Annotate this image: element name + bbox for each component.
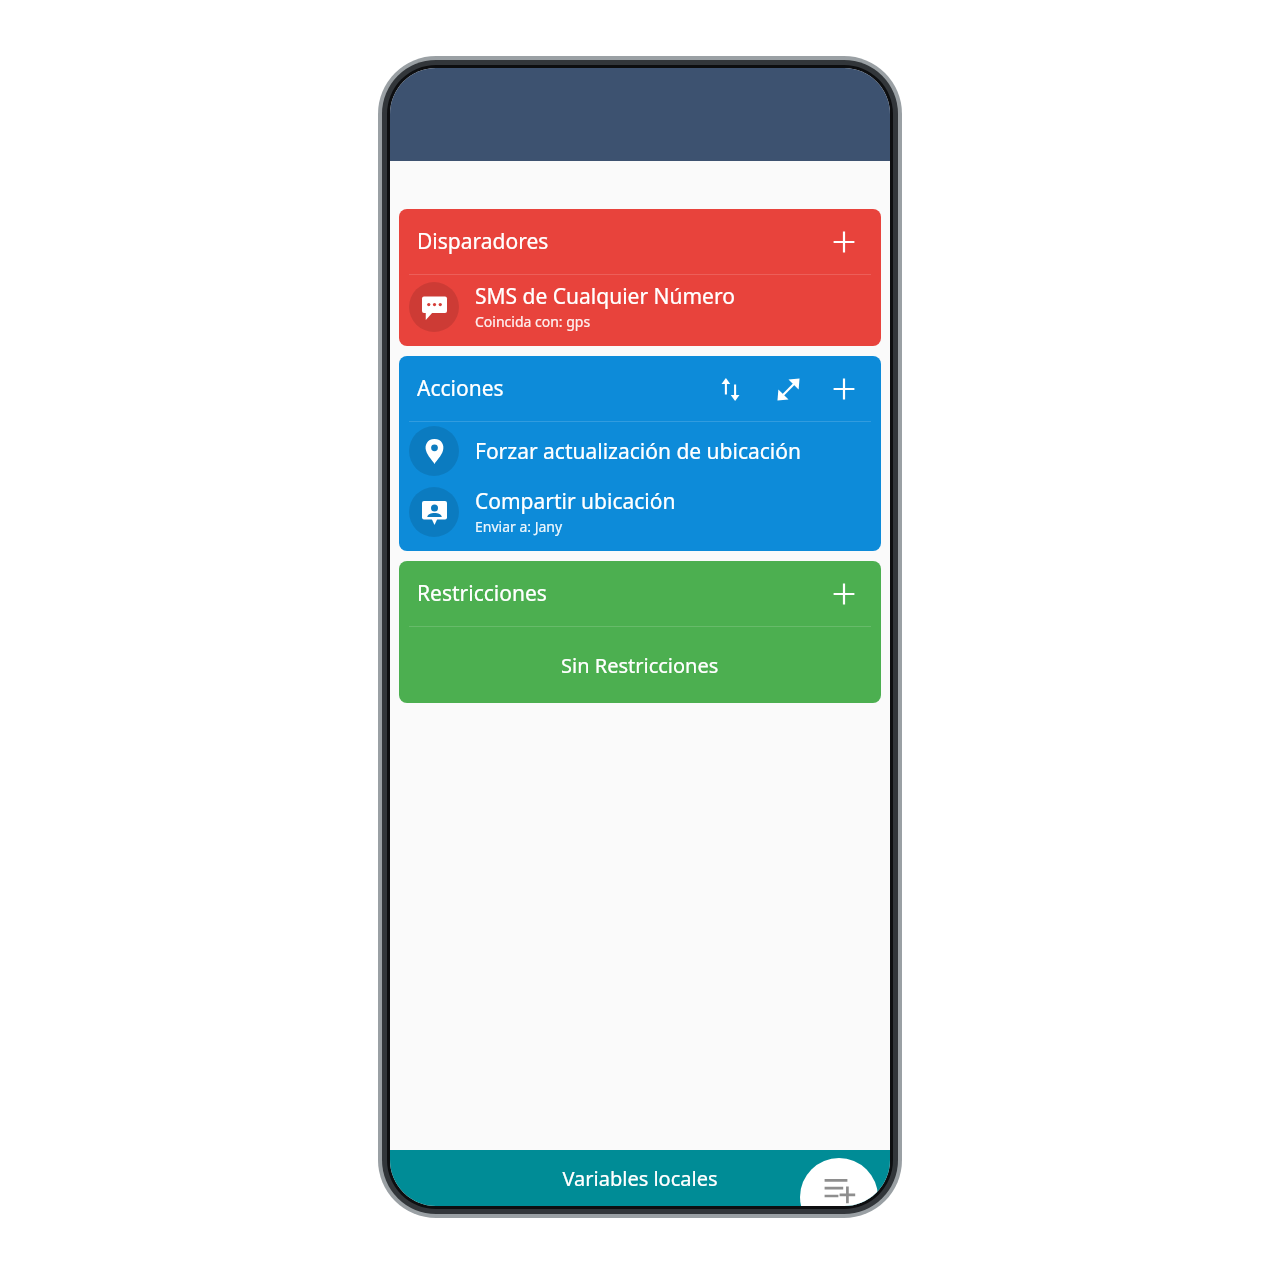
staticText: Acciones — [417, 374, 504, 403]
staticText: Forzar actualización de ubicación — [475, 437, 801, 466]
staticText: Restricciones — [417, 579, 547, 608]
button[interactable]: Acciones — [399, 356, 881, 421]
button[interactable]: Add Acciones — [823, 368, 865, 410]
button[interactable]: Sin Restricciones — [399, 627, 881, 703]
button[interactable]: Disparadores — [399, 209, 881, 274]
button[interactable]: Add local variable — [800, 1158, 878, 1206]
staticText: Compartir ubicación — [475, 487, 676, 516]
staticText: Coincida con: gps — [475, 312, 591, 331]
button[interactable]: Add Disparadores — [823, 221, 865, 263]
button[interactable]: Forzar actualización de ubicación — [399, 422, 881, 480]
button[interactable]: Compartir ubicación — [399, 480, 881, 543]
button[interactable]: Variables locales — [390, 1150, 890, 1206]
button[interactable]: Sort — [709, 368, 751, 410]
button[interactable]: Add Restricciones — [823, 573, 865, 615]
button[interactable]: Expand — [767, 368, 809, 410]
staticText: Disparadores — [417, 227, 549, 256]
staticText: Sin Restricciones — [561, 652, 719, 679]
staticText: Variables locales — [562, 1165, 718, 1192]
button[interactable]: SMS de Cualquier Número — [399, 275, 881, 338]
button[interactable]: Restricciones — [399, 561, 881, 626]
staticText: SMS de Cualquier Número — [475, 282, 735, 311]
staticText: Enviar a: Jany — [475, 517, 563, 536]
